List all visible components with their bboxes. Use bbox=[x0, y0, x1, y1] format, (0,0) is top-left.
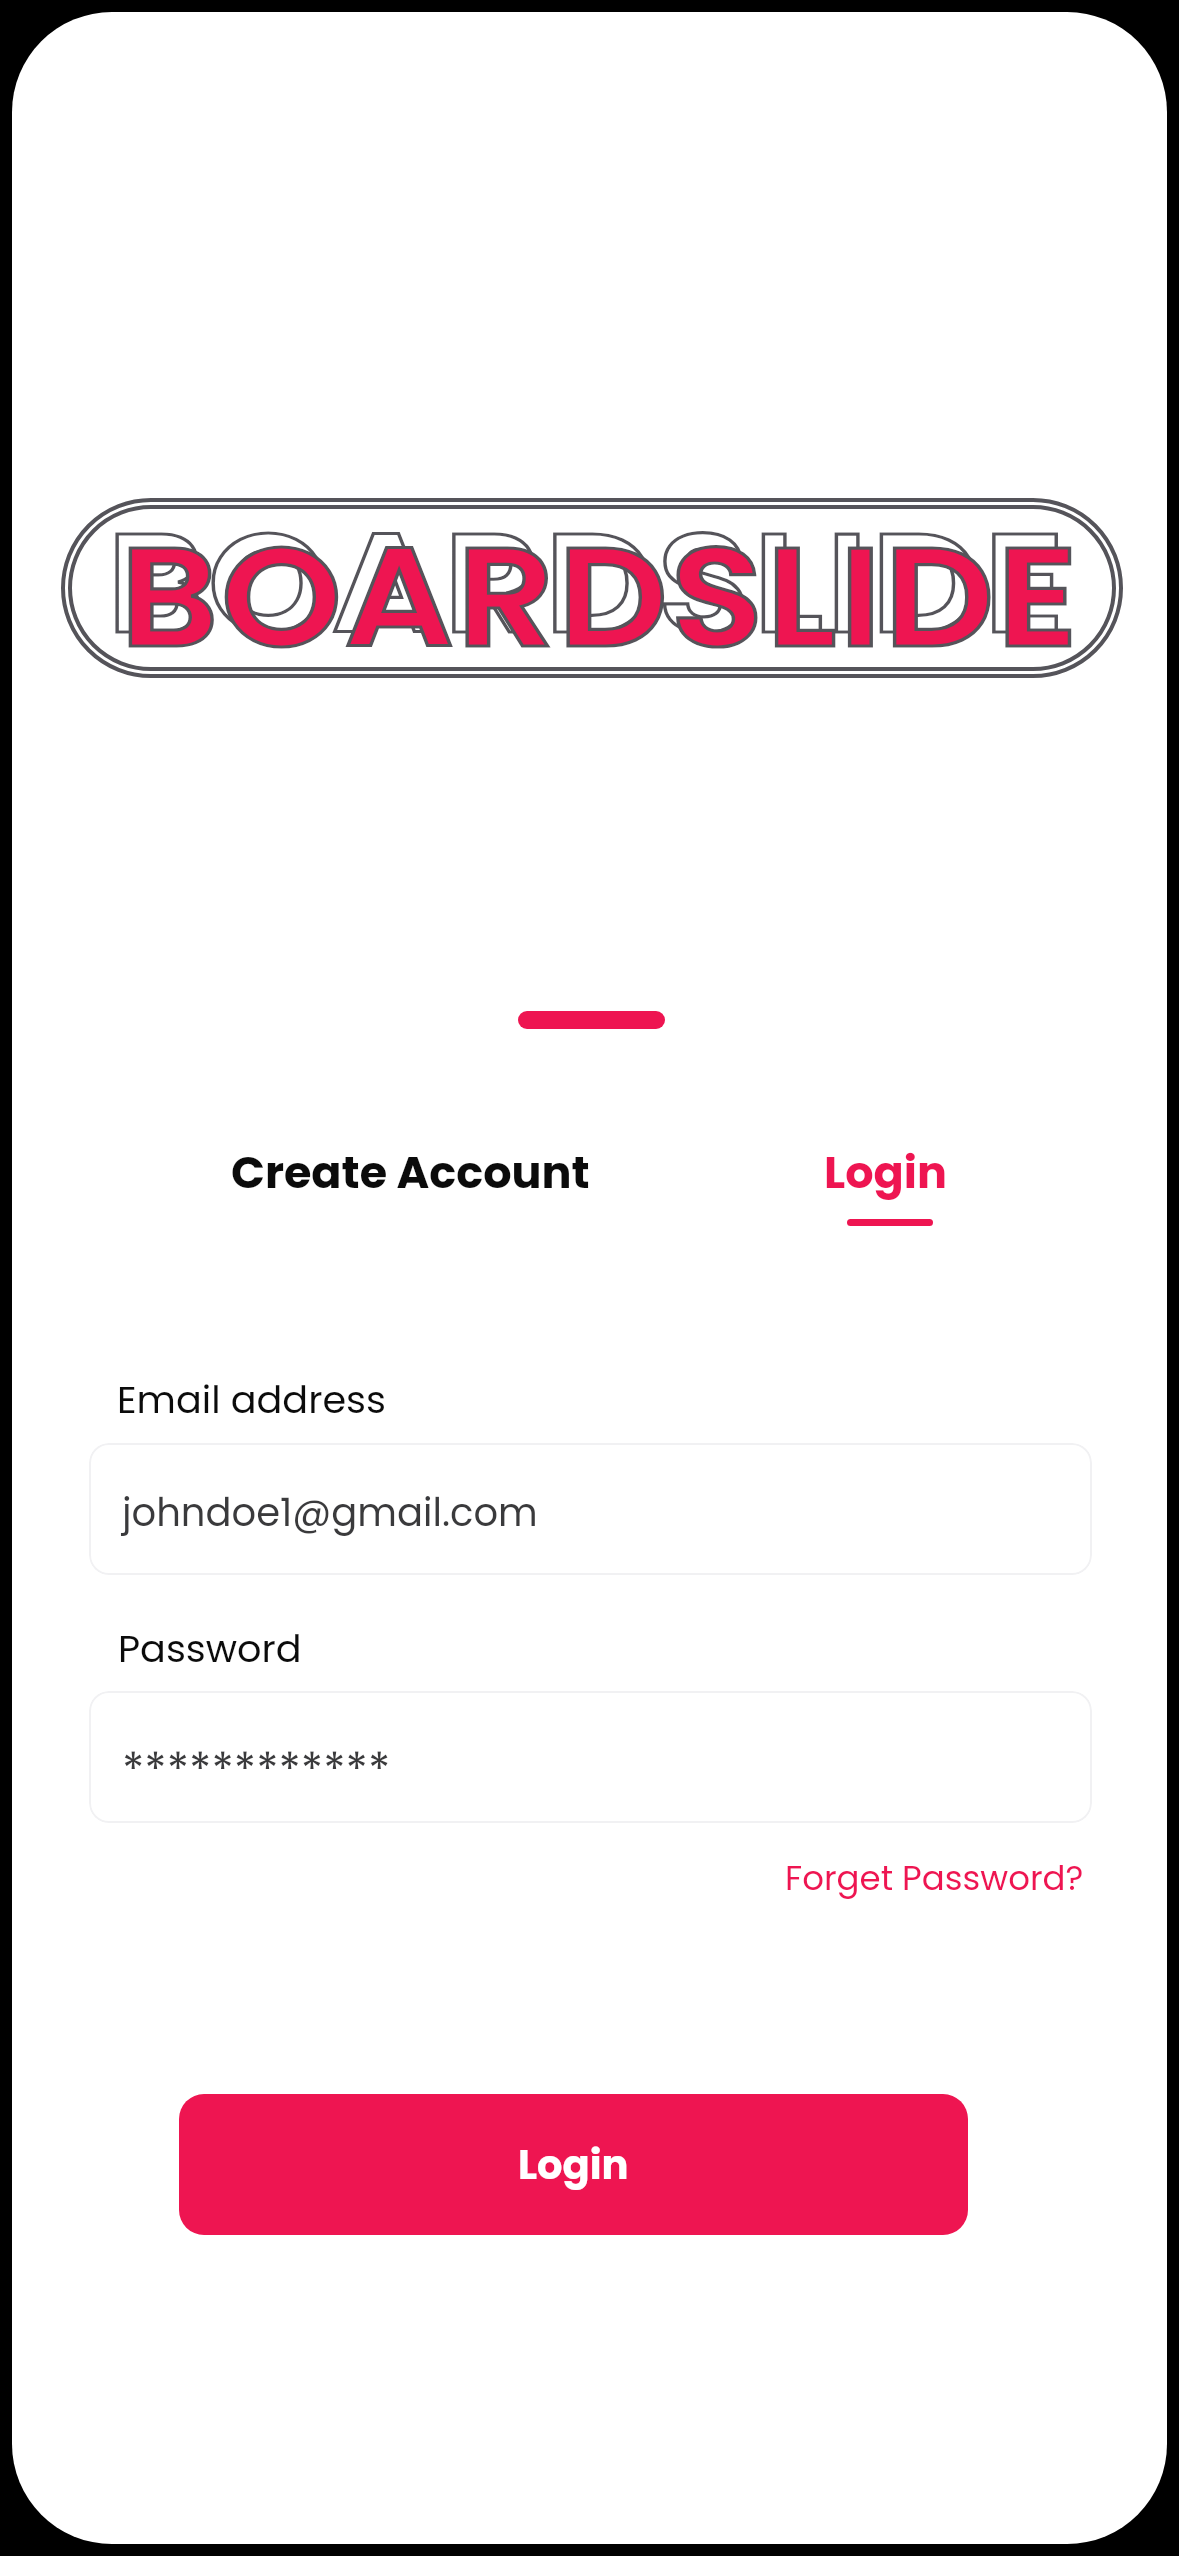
staticText: Forget Password? bbox=[785, 1854, 1084, 1902]
button[interactable]: Forget Password? bbox=[761, 1842, 1108, 1914]
button[interactable]: Login bbox=[179, 2094, 968, 2235]
staticText: Email address bbox=[117, 1373, 386, 1426]
staticText: johndoe1@gmail.com bbox=[122, 1486, 538, 1540]
staticText: BOARDSLIDE bbox=[119, 499, 1081, 679]
button[interactable]: johndoe1@gmail.com bbox=[89, 1443, 1092, 1575]
button[interactable]: Create Account bbox=[207, 1123, 614, 1221]
staticText: Login bbox=[824, 1141, 947, 1203]
staticText: ************ bbox=[122, 1738, 391, 1802]
staticText: Create Account bbox=[231, 1141, 590, 1203]
staticText: BOARDSLIDE bbox=[106, 485, 1068, 665]
staticText: Password bbox=[118, 1622, 302, 1675]
button[interactable]: ************ bbox=[89, 1691, 1092, 1823]
button[interactable]: Login bbox=[800, 1123, 971, 1221]
staticText: BOARDSLIDE bbox=[119, 499, 1081, 679]
staticText: BOARDSLIDE bbox=[106, 485, 1068, 665]
staticText: Login bbox=[518, 2137, 629, 2193]
